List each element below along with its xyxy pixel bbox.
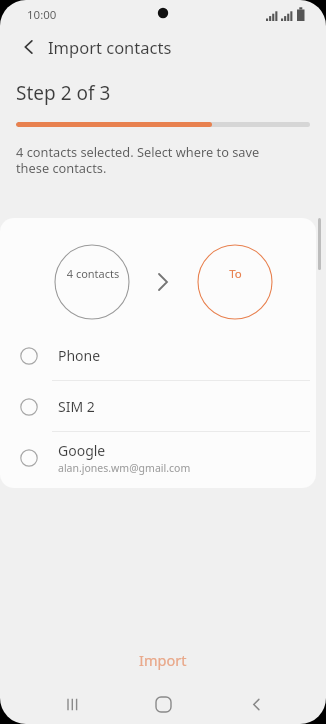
staticText: Import (139, 650, 187, 670)
staticText: Google (58, 441, 106, 460)
staticText: Phone (58, 346, 101, 365)
staticText: 10:00 (27, 7, 57, 23)
staticText: Import contacts (48, 36, 172, 58)
button[interactable]: Home (145, 686, 181, 722)
button[interactable]: Back (12, 30, 46, 64)
staticText: 4 contacts selected. Select where to sav… (16, 143, 260, 177)
button[interactable]: Phone (0, 330, 316, 381)
button[interactable]: Recents (55, 686, 91, 722)
staticText: Step 2 of 3 (16, 80, 111, 106)
staticText: alan.jones.wm@gmail.com (58, 461, 191, 475)
button[interactable]: SIM 2 (0, 381, 316, 432)
staticText: 4 contacts (62, 266, 124, 281)
staticText: To (222, 266, 249, 282)
button[interactable]: Back (238, 686, 274, 722)
button[interactable]: Import (0, 640, 326, 680)
button[interactable]: Google (0, 432, 316, 483)
staticText: SIM 2 (58, 397, 95, 416)
